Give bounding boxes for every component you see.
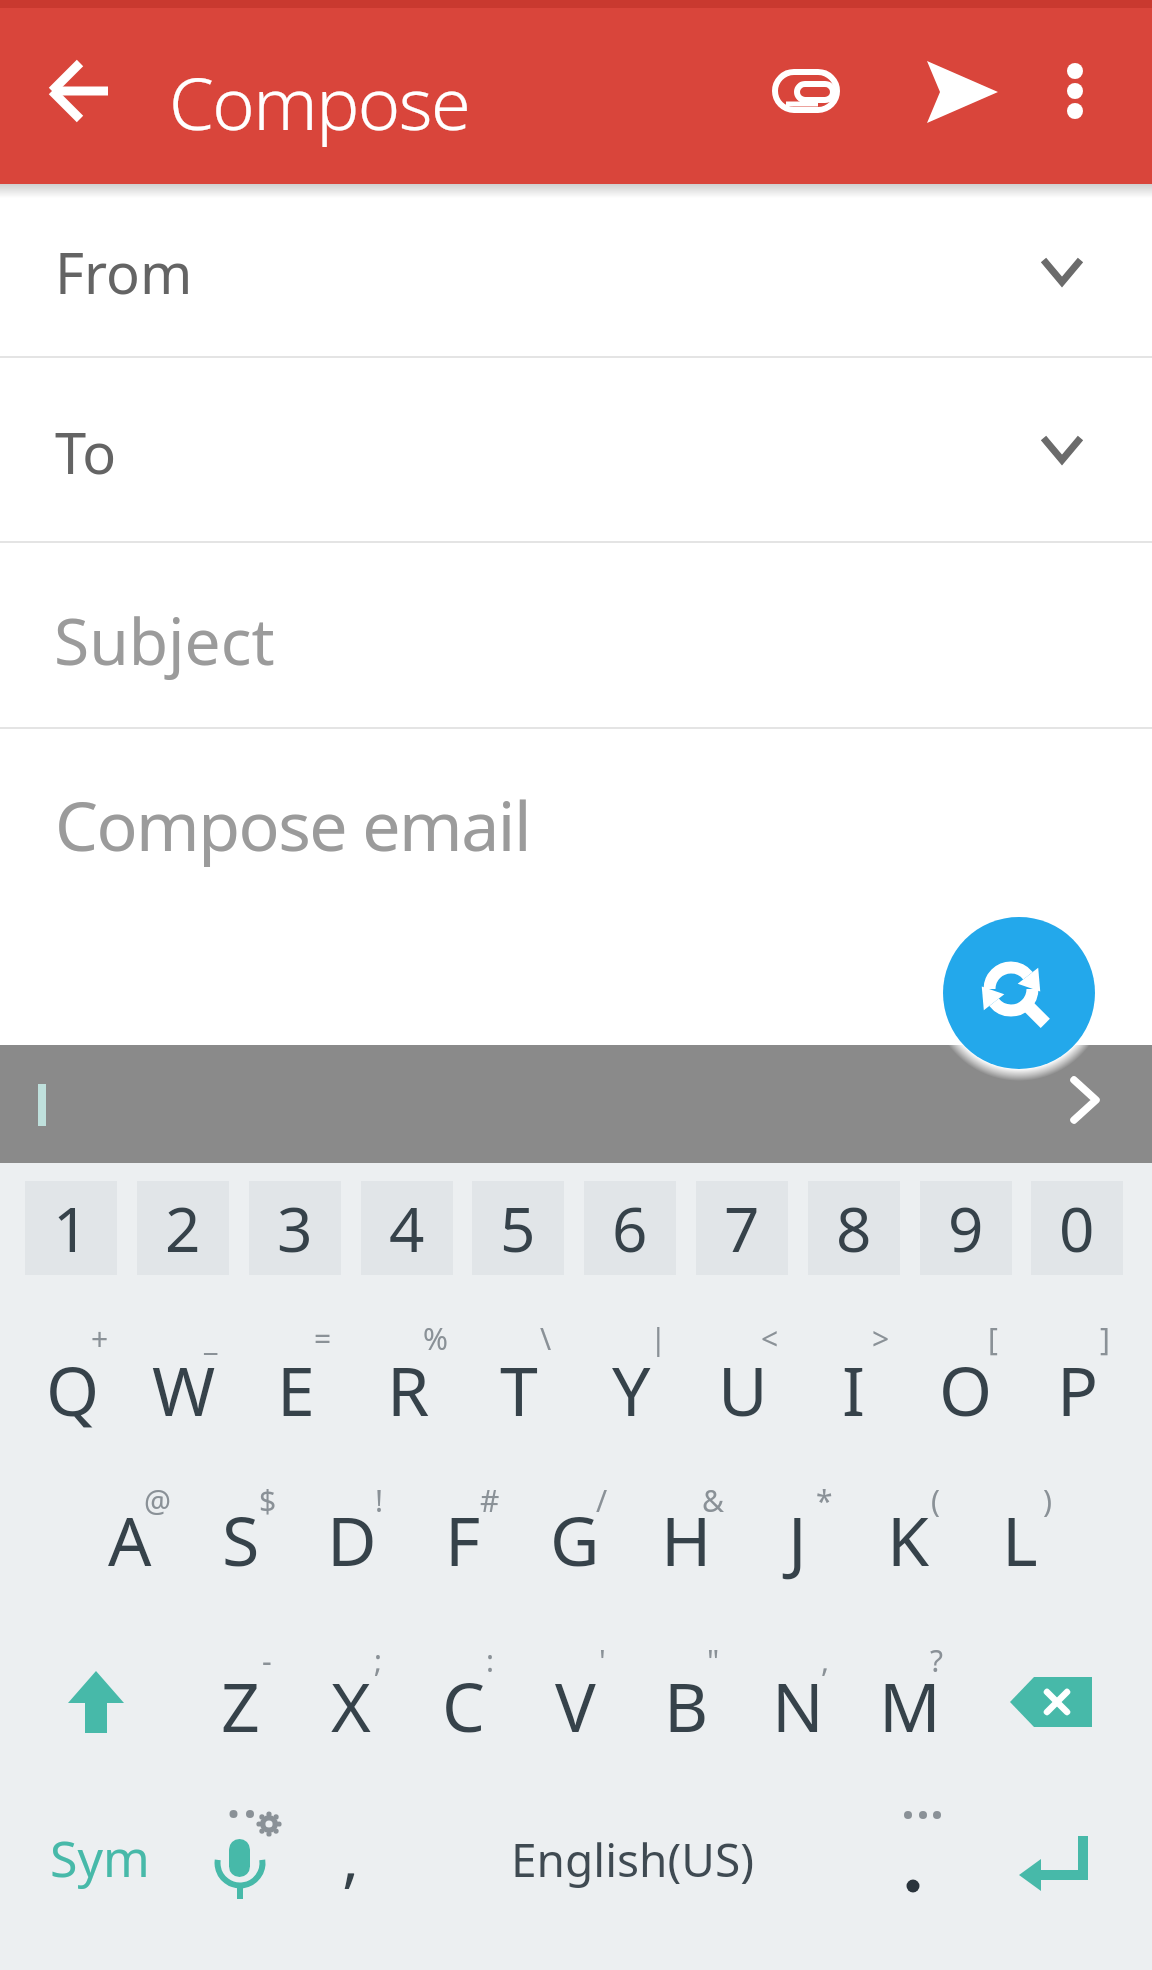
button[interactable] [30,1800,170,1920]
staticText: Compose [169,53,470,151]
button[interactable] [1026,1318,1130,1462]
staticText: < [761,1318,779,1359]
button[interactable] [991,1632,1111,1772]
staticText: K [887,1493,930,1586]
staticText: Subject [54,597,275,684]
button[interactable] [746,1633,850,1777]
staticText: * [816,1480,833,1521]
staticText: 6 [612,1186,648,1270]
staticText: ; [374,1640,383,1681]
staticText: L [1002,1493,1038,1586]
button[interactable] [745,1468,849,1612]
staticText: ? [930,1640,944,1681]
button[interactable] [0,543,1152,725]
staticText: 7 [724,1186,760,1270]
staticText: Z [221,1659,260,1752]
button[interactable] [858,1633,962,1777]
button[interactable] [467,1318,571,1462]
button[interactable] [912,42,1012,142]
staticText: R [387,1343,430,1436]
button[interactable] [36,1632,156,1772]
staticText: | [650,1318,667,1359]
staticText: 0 [1059,1186,1095,1270]
staticText: = [314,1318,332,1359]
staticText: ' [599,1640,606,1681]
button[interactable] [523,1468,627,1612]
staticText: A [108,1493,152,1586]
button[interactable] [995,1796,1115,1936]
button[interactable] [0,186,1152,356]
staticText: % [423,1318,448,1359]
button[interactable] [865,1790,965,1910]
button[interactable] [170,1786,310,1936]
button[interactable] [634,1633,738,1777]
staticText: E [277,1343,315,1436]
button[interactable]: 5 [472,1181,564,1275]
staticText: - [262,1640,272,1681]
staticText: 4 [389,1186,425,1270]
button[interactable] [189,1468,293,1612]
button[interactable] [30,41,130,141]
staticText: Q [46,1343,100,1436]
staticText: " [707,1640,720,1681]
button[interactable]: 6 [584,1181,676,1275]
staticText: 5 [500,1186,536,1270]
staticText: English(US) [511,1828,754,1891]
button[interactable] [78,1468,182,1612]
button[interactable] [411,1468,515,1612]
button[interactable] [300,1468,404,1612]
staticText: G [550,1493,600,1586]
button[interactable] [802,1318,906,1462]
button[interactable] [856,1468,960,1612]
button[interactable] [579,1318,683,1462]
button[interactable]: 2 [137,1181,229,1275]
staticText: 3 [277,1186,313,1270]
button[interactable] [21,1318,125,1462]
button[interactable]: 8 [808,1181,900,1275]
staticText: # [480,1480,500,1521]
button[interactable] [132,1318,236,1462]
button[interactable]: 3 [249,1181,341,1275]
button[interactable]: 0 [1031,1181,1123,1275]
staticText: : [486,1640,495,1681]
staticText: Compose email [55,778,530,871]
button[interactable] [422,1800,842,1920]
staticText: B [664,1659,709,1752]
button[interactable]: 7 [696,1181,788,1275]
button[interactable] [299,1633,403,1777]
staticText: ] [1100,1318,1110,1359]
staticText: H [661,1493,712,1586]
staticText: J [788,1493,807,1586]
staticText: N [772,1659,824,1752]
button[interactable] [356,1318,460,1462]
staticText: C [442,1659,485,1752]
button[interactable] [634,1468,738,1612]
staticText: D [327,1493,377,1586]
staticText: To [55,414,117,490]
button[interactable] [411,1633,515,1777]
button[interactable] [1052,1068,1118,1134]
button[interactable] [757,42,857,142]
button[interactable]: 9 [920,1181,1012,1275]
staticText: & [702,1480,724,1521]
button[interactable] [300,1800,404,1920]
staticText: V [555,1659,596,1752]
staticText: P [1057,1343,1099,1436]
staticText: [ [988,1318,998,1359]
button[interactable] [943,917,1095,1069]
staticText: 1 [53,1186,89,1270]
button[interactable] [244,1318,348,1462]
button[interactable] [968,1468,1072,1612]
staticText: 8 [836,1186,872,1270]
button[interactable] [188,1633,292,1777]
button[interactable] [691,1318,795,1462]
button[interactable] [1030,41,1120,141]
button[interactable] [914,1318,1018,1462]
button[interactable] [0,729,1152,1045]
staticText: X [331,1659,371,1752]
button[interactable]: 1 [25,1181,117,1275]
button[interactable] [0,358,1152,540]
button[interactable] [523,1633,627,1777]
staticText: 2 [165,1186,201,1270]
button[interactable]: 4 [361,1181,453,1275]
